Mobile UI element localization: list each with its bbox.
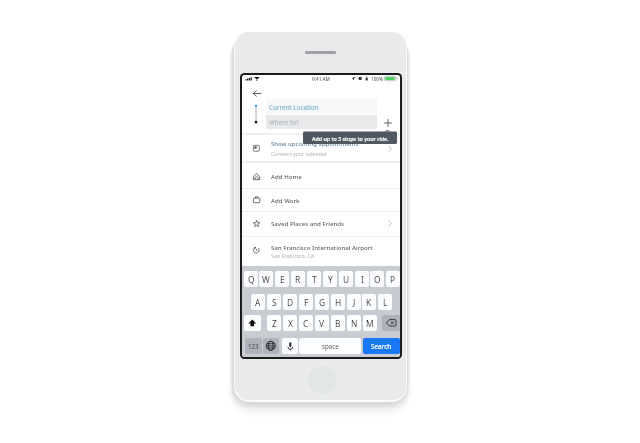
button[interactable]: T [307, 271, 321, 287]
button[interactable]: Search [363, 338, 400, 354]
button[interactable]: Where to? [266, 115, 377, 129]
button[interactable]: A [251, 294, 265, 310]
button[interactable]: Z [267, 315, 281, 331]
button[interactable]: Backspace [382, 315, 400, 331]
button[interactable]: Saved Places and Friends [242, 211, 400, 235]
staticText: B [335, 318, 341, 329]
staticText: I [361, 274, 364, 285]
button[interactable]: E [275, 271, 289, 287]
button[interactable]: G [315, 294, 329, 310]
staticText: D [287, 297, 294, 308]
staticText: H [335, 297, 342, 308]
staticText: Add Work [271, 196, 300, 204]
button[interactable]: X [283, 315, 297, 331]
staticText: 100% [371, 76, 384, 82]
staticText: M [366, 318, 374, 329]
staticText: Search [371, 342, 392, 351]
staticText: X [288, 318, 293, 329]
button[interactable]: D [283, 294, 297, 310]
button[interactable]: P [386, 271, 400, 287]
staticText: A [255, 297, 261, 308]
button[interactable]: W [259, 271, 273, 287]
button[interactable]: Current Location [266, 99, 377, 114]
staticText: space [322, 342, 339, 350]
button[interactable]: O [370, 271, 384, 287]
staticText: T [312, 274, 317, 285]
staticText: U [343, 274, 350, 285]
button[interactable]: J [347, 294, 361, 310]
button[interactable]: Y [323, 271, 337, 287]
staticText: W [262, 274, 270, 285]
button[interactable]: I [355, 271, 369, 287]
button[interactable]: H [331, 294, 345, 310]
button[interactable]: San Francisco International Airport [242, 237, 400, 266]
button[interactable]: Back [248, 86, 265, 100]
button[interactable]: C [299, 315, 313, 331]
staticText: P [390, 274, 396, 285]
button[interactable]: Switch keyboard [263, 338, 279, 354]
staticText: C [303, 318, 309, 329]
staticText: Current Location [269, 103, 319, 111]
button[interactable]: Add Work [242, 188, 400, 211]
button[interactable]: N [347, 315, 361, 331]
staticText: 9:41 AM [312, 76, 330, 82]
staticText: Add Home [271, 172, 302, 180]
staticText: Add up to 3 stops to your ride. [312, 135, 389, 142]
staticText: San Francisco, CA [271, 252, 315, 259]
button[interactable]: F [299, 294, 313, 310]
button[interactable]: Q [244, 271, 258, 287]
staticText: G [319, 297, 326, 308]
staticText: V [319, 318, 325, 329]
button[interactable]: R [291, 271, 305, 287]
button[interactable]: B [331, 315, 345, 331]
button[interactable]: Add stop [381, 116, 395, 129]
button[interactable]: space [299, 338, 361, 354]
staticText: Z [272, 318, 277, 329]
button[interactable]: U [339, 271, 353, 287]
staticText: N [351, 318, 358, 329]
button[interactable]: Add Home [242, 164, 400, 188]
staticText: S [272, 297, 277, 308]
staticText: Connect your calendar [271, 150, 328, 157]
staticText: San Francisco International Airport [271, 243, 373, 251]
staticText: Q [248, 274, 255, 285]
staticText: F [304, 297, 309, 308]
staticText: Saved Places and Friends [271, 219, 344, 227]
button[interactable]: L [378, 294, 392, 310]
staticText: E [280, 274, 285, 285]
staticText: 123 [248, 342, 259, 350]
button[interactable]: S [267, 294, 281, 310]
staticText: O [374, 274, 381, 285]
button[interactable]: Voice input [282, 338, 298, 354]
staticText: J [353, 297, 356, 308]
staticText: L [383, 297, 388, 308]
button[interactable]: 123 [245, 338, 262, 354]
staticText: Where to? [269, 118, 299, 126]
button[interactable]: Show upcoming appointments [242, 135, 400, 161]
button[interactable]: K [362, 294, 376, 310]
button[interactable]: V [315, 315, 329, 331]
staticText: K [366, 297, 372, 308]
button[interactable]: Shift [244, 315, 261, 331]
staticText: R [295, 274, 301, 285]
button[interactable]: M [363, 315, 377, 331]
staticText: Show upcoming appointments [271, 140, 359, 148]
staticText: Y [328, 274, 333, 285]
